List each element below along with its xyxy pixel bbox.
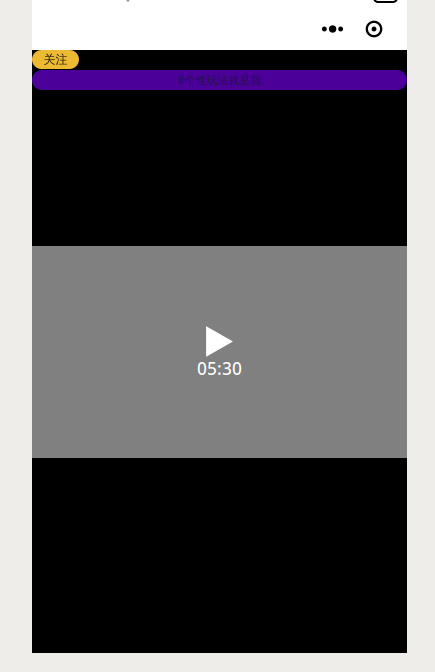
button[interactable]: #个性玩法就是我: [32, 70, 407, 90]
button[interactable]: Capture: [356, 11, 392, 47]
button[interactable]: 关注: [32, 50, 79, 69]
button[interactable]: More options: [309, 11, 356, 47]
staticText: 05:30: [197, 357, 242, 380]
staticText: 关注: [43, 52, 67, 67]
staticText: #个性玩法就是我: [177, 73, 261, 87]
